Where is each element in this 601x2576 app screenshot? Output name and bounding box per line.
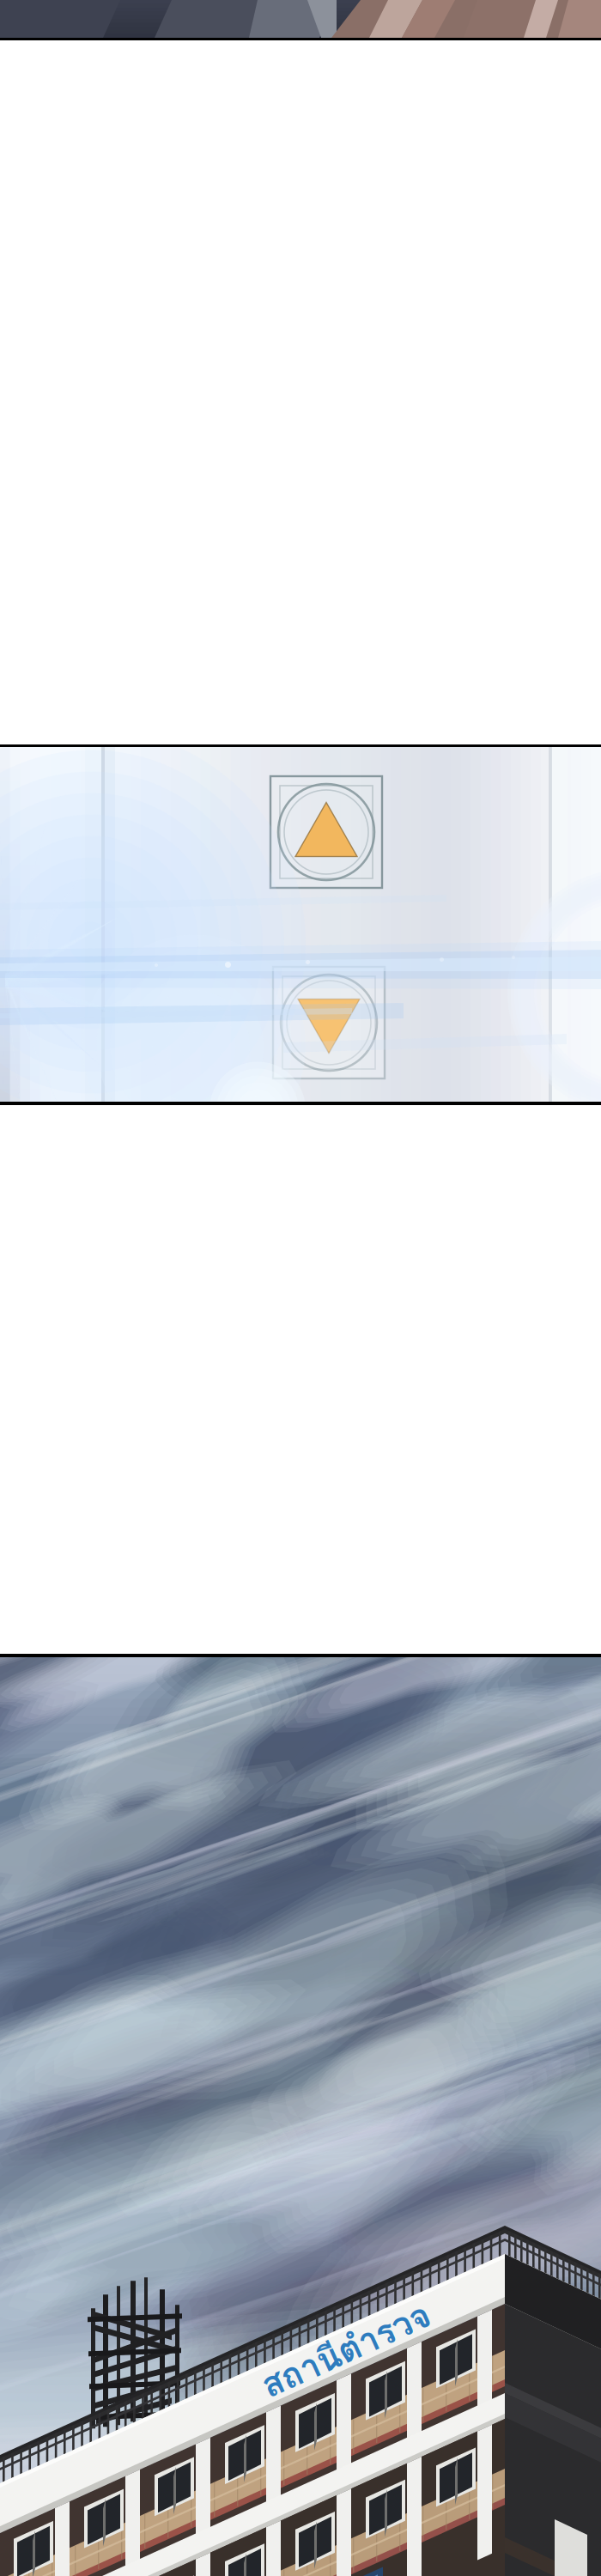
button[interactable]: Call elevator up bbox=[268, 774, 385, 890]
button[interactable]: Call elevator down bbox=[270, 964, 387, 1081]
staticText: สถานีตำรวจ bbox=[252, 2363, 434, 2417]
